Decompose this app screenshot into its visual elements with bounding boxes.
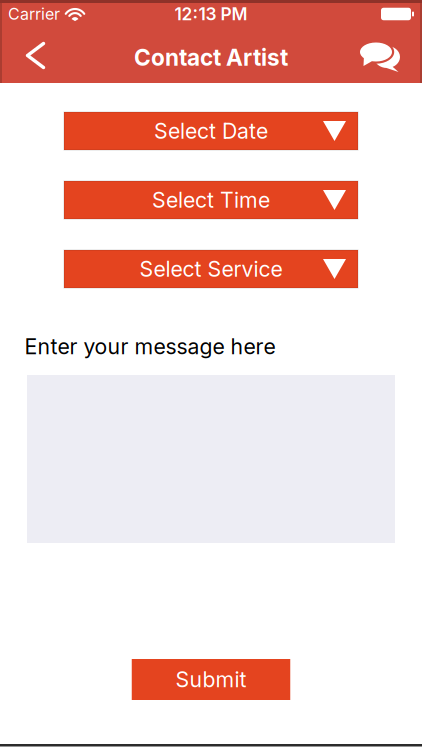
staticText: Select Time (152, 187, 270, 213)
button[interactable]: Back (0, 32, 56, 79)
staticText: Select Date (154, 118, 268, 144)
button[interactable]: Select Service (64, 250, 358, 288)
staticText: 12:13 PM (174, 3, 247, 24)
button[interactable]: Select Time (64, 181, 358, 219)
staticText: Select Service (139, 256, 282, 282)
staticText: Contact Artist (134, 44, 288, 71)
button[interactable]: Submit (132, 659, 290, 700)
button[interactable]: Select Date (64, 112, 358, 150)
button[interactable]: Chat (357, 37, 422, 73)
staticText: Enter your message here (24, 334, 275, 359)
staticText: Carrier (8, 4, 60, 24)
staticText: Submit (175, 667, 246, 692)
